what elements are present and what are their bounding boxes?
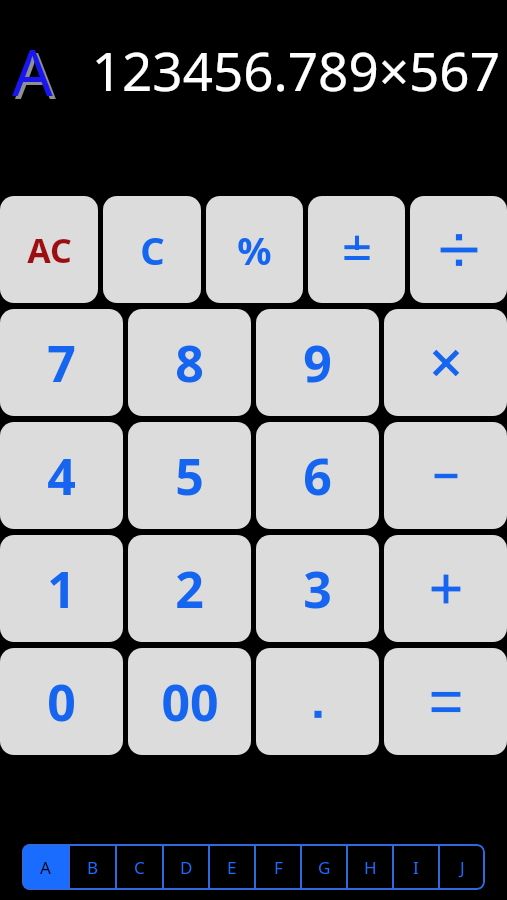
staticText: A [40,856,51,879]
button[interactable]: 1 [0,535,123,642]
staticText: 123456.789×567 [0,34,500,106]
button[interactable]: Multiply [384,309,507,416]
button[interactable]: 4 [0,422,123,529]
button[interactable]: Equals [384,648,507,755]
button[interactable]: 3 [256,535,379,642]
staticText: 9 [303,329,332,397]
button[interactable]: C [116,844,163,890]
staticText: 0 [47,668,76,736]
staticText: 3 [303,555,332,623]
staticText: A [12,28,53,115]
staticText: 00 [161,668,219,736]
button[interactable]: H [347,844,393,890]
button[interactable]: B [69,844,116,890]
staticText: 1 [47,555,76,623]
button[interactable]: Divide [410,196,507,303]
staticText: G [318,856,331,879]
button[interactable]: 0 [0,648,123,755]
button[interactable]: 6 [256,422,379,529]
button[interactable]: Plus minus [308,196,405,303]
staticText: AC [27,227,72,273]
button[interactable]: 7 [0,309,123,416]
button[interactable]: AC [0,196,98,303]
staticText: 5 [175,442,204,510]
button[interactable]: 9 [256,309,379,416]
button[interactable]: A [22,844,69,890]
button[interactable]: Plus [384,535,507,642]
staticText: C [134,856,145,879]
button[interactable]: A [12,28,53,115]
staticText: A [15,31,56,118]
staticText: C [140,224,165,276]
button[interactable]: Decimal point [256,648,379,755]
staticText: F [274,856,283,879]
staticText: 8 [175,329,204,397]
button[interactable]: J [439,844,485,890]
staticText: E [227,856,237,879]
button[interactable]: 5 [128,422,251,529]
button[interactable]: 2 [128,535,251,642]
staticText: 4 [47,442,76,510]
button[interactable]: D [163,844,209,890]
button[interactable]: G [301,844,347,890]
staticText: D [180,856,193,879]
button[interactable]: 8 [128,309,251,416]
staticText: 7 [47,329,76,397]
button[interactable]: F [255,844,301,890]
staticText: J [460,856,465,879]
staticText: H [364,856,377,879]
staticText: 2 [175,555,204,623]
button[interactable]: C [103,196,201,303]
staticText: 6 [303,442,332,510]
staticText: % [237,224,272,276]
button[interactable]: Minus [384,422,507,529]
staticText: B [87,856,99,879]
button[interactable]: I [393,844,439,890]
button[interactable]: 00 [128,648,251,755]
button[interactable]: % [206,196,303,303]
staticText: I [413,856,419,879]
button[interactable]: E [209,844,255,890]
